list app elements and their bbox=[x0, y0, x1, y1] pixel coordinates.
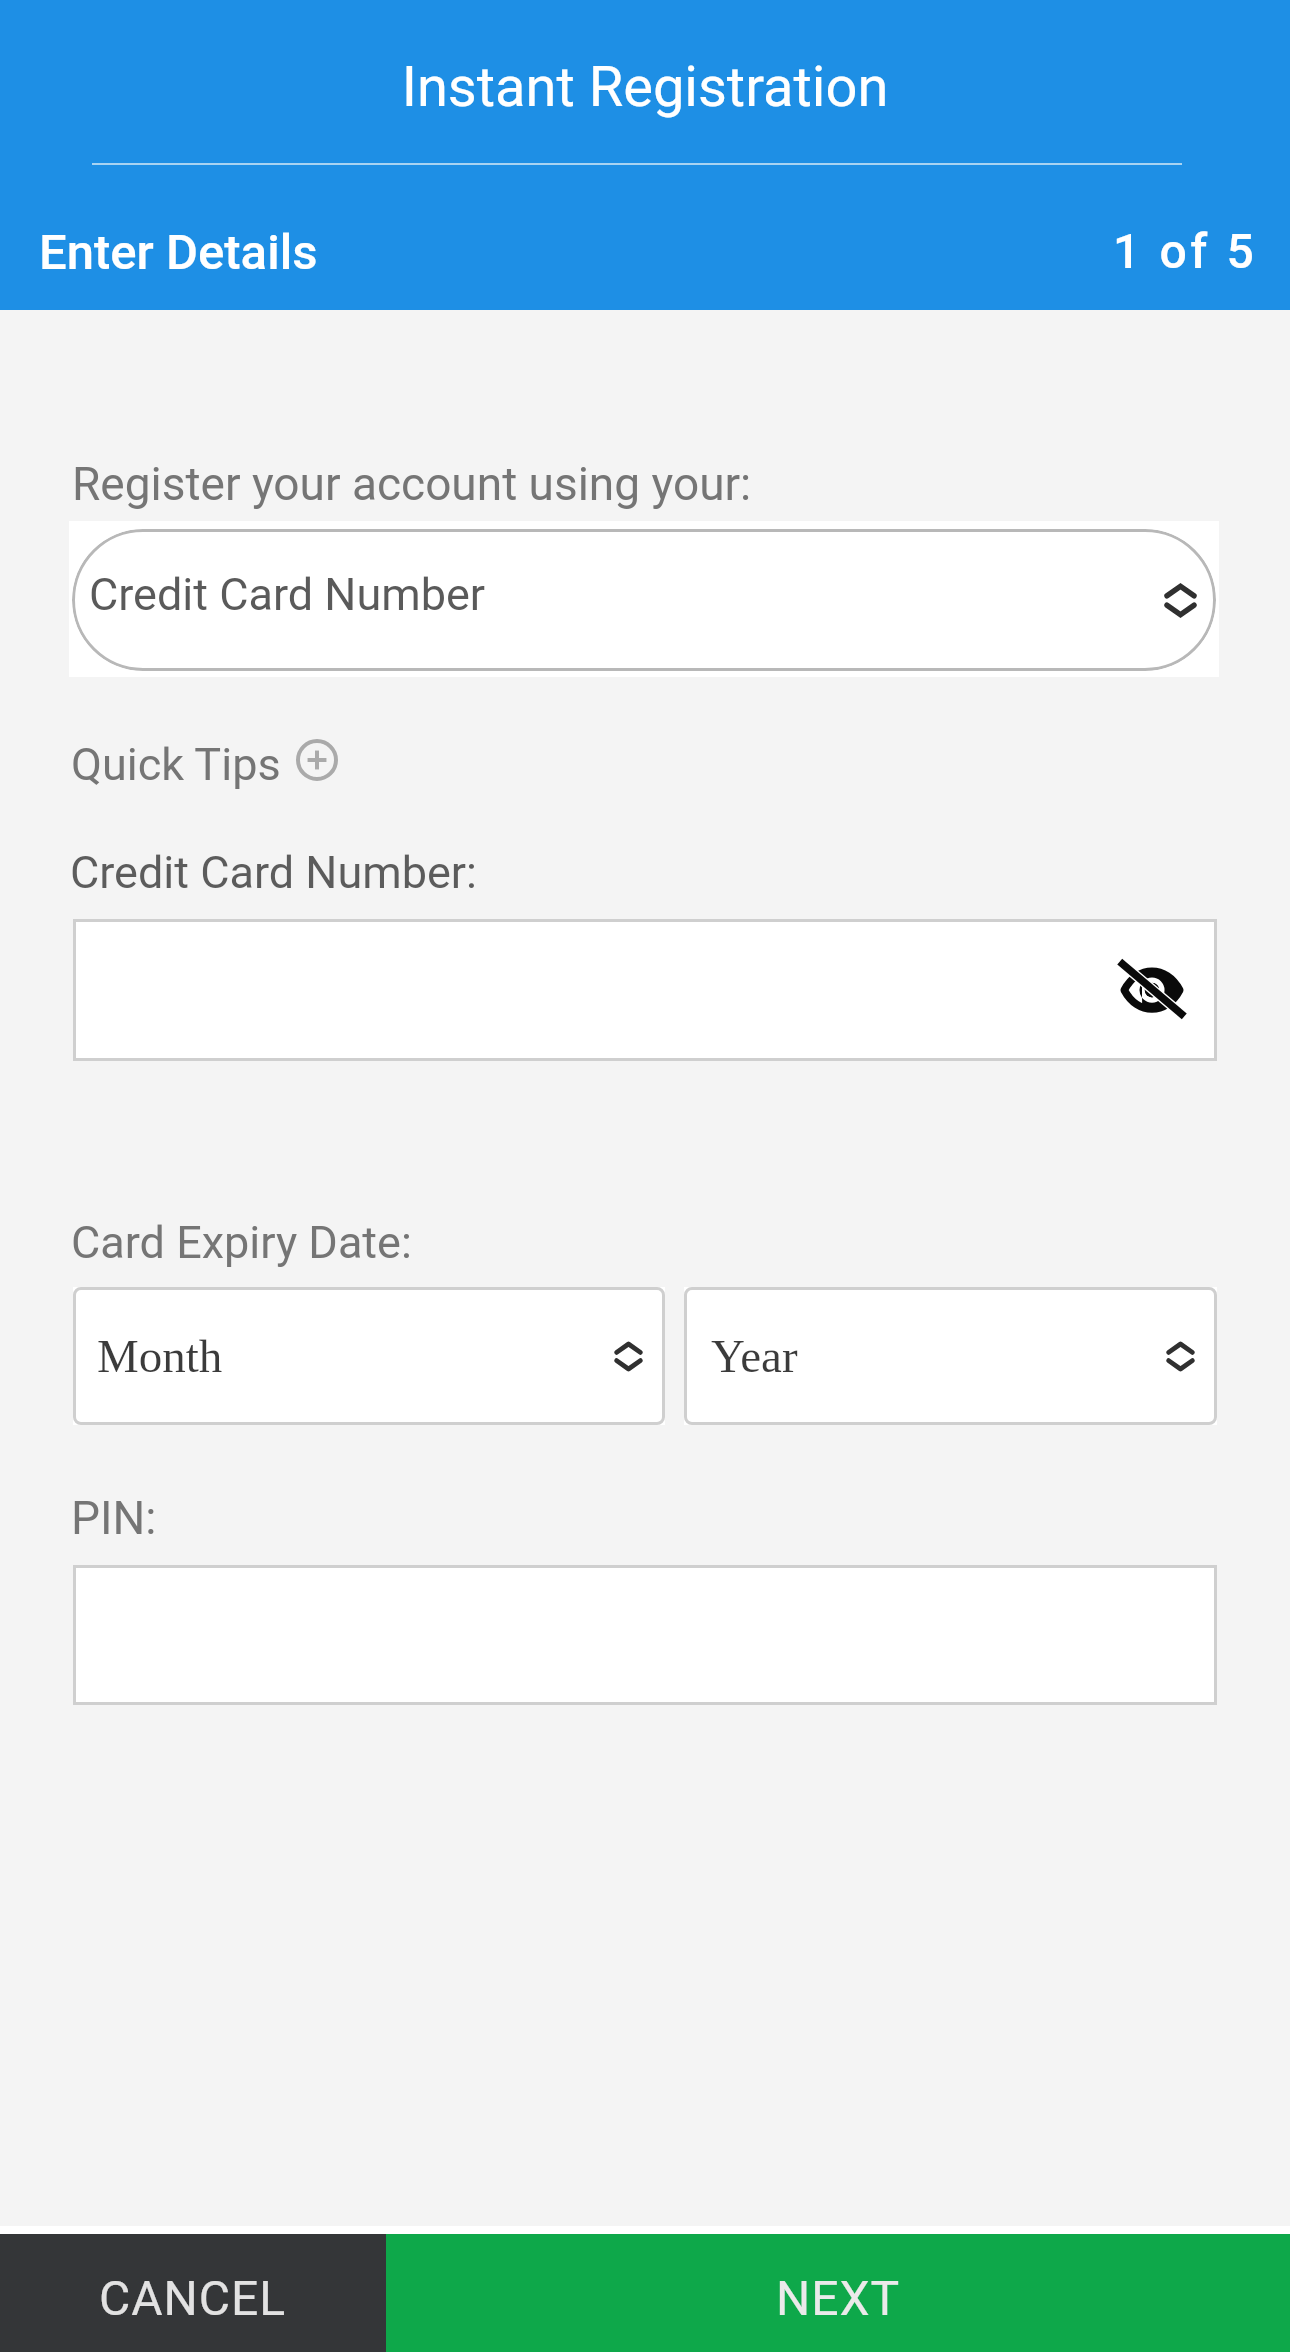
staticText: NEXT bbox=[776, 2270, 901, 2326]
button[interactable]: CANCEL bbox=[0, 2234, 386, 2352]
button[interactable]: Month bbox=[73, 1287, 665, 1425]
staticText: Credit Card Number bbox=[89, 568, 486, 621]
staticText: Month bbox=[97, 1330, 223, 1382]
staticText: Enter Details bbox=[39, 224, 318, 281]
button[interactable]: Year bbox=[684, 1287, 1217, 1425]
button[interactable]: Credit Card Number bbox=[72, 529, 1216, 671]
staticText: Year bbox=[711, 1330, 798, 1382]
button[interactable]: Quick Tips bbox=[71, 734, 338, 794]
staticText: Register your account using your: bbox=[72, 457, 752, 511]
staticText: Instant Registration bbox=[0, 54, 1290, 120]
button[interactable]: Show card number bbox=[73, 919, 1217, 1061]
button[interactable]: NEXT bbox=[386, 2234, 1290, 2352]
staticText: Quick Tips bbox=[71, 738, 281, 791]
staticText: CANCEL bbox=[99, 2270, 287, 2326]
staticText: Credit Card Number: bbox=[70, 846, 477, 899]
button[interactable]: Show card number bbox=[1097, 936, 1205, 1044]
staticText: 1 of 5 bbox=[1113, 223, 1258, 279]
staticText: PIN: bbox=[71, 1491, 157, 1545]
staticText: Card Expiry Date: bbox=[71, 1216, 412, 1269]
button[interactable] bbox=[73, 1565, 1217, 1705]
